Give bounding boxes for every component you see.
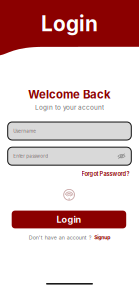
button[interactable]: Login (12, 211, 126, 228)
button[interactable]: Forgot Password ? (78, 170, 130, 177)
staticText: Signup (94, 234, 110, 240)
staticText: Forgot Password ? (82, 171, 130, 177)
staticText: Login to your account (35, 104, 104, 111)
staticText: Login (41, 11, 98, 36)
staticText: Enter password (13, 153, 48, 159)
staticText: Login (56, 214, 81, 225)
button[interactable]: Sign in with fingerprint (61, 187, 77, 203)
staticText: Username (13, 128, 36, 134)
staticText: Don't have an account ? (29, 234, 92, 241)
button[interactable]: Signup (94, 234, 110, 240)
staticText: Welcome Back (28, 88, 111, 101)
